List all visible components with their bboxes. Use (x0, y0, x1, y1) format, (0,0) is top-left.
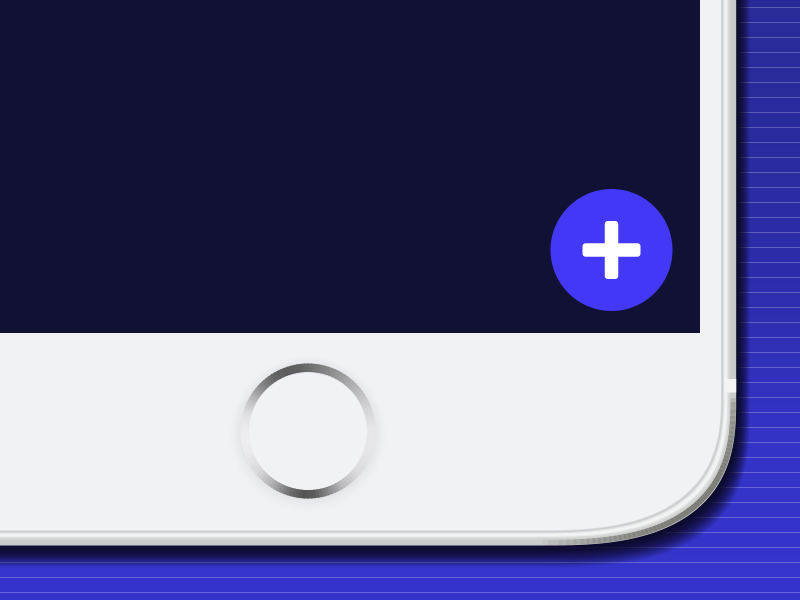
button[interactable]: Add (550, 189, 672, 311)
button[interactable]: Home (0, 0, 800, 600)
